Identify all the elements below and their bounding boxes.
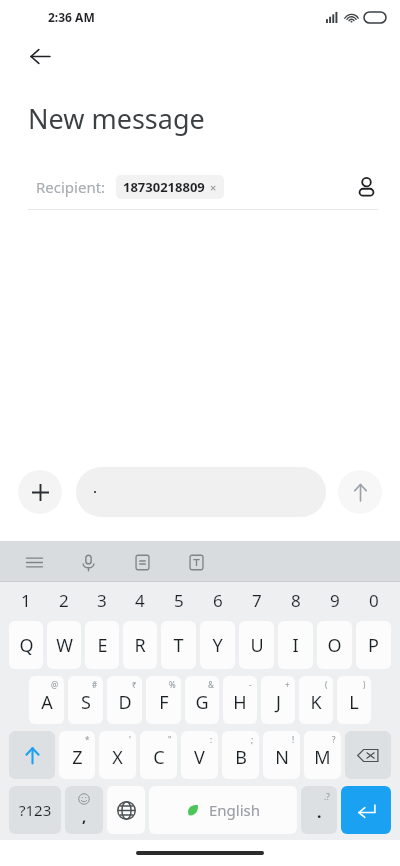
staticText: G xyxy=(195,690,209,715)
button[interactable]: & xyxy=(185,676,219,724)
staticText: : xyxy=(210,734,213,745)
staticText: 3 xyxy=(97,589,107,612)
button[interactable]: P xyxy=(356,621,391,669)
button[interactable]: 3 xyxy=(83,585,121,615)
button[interactable]: 6 xyxy=(198,585,237,615)
staticText: 2:36 AM xyxy=(48,9,95,25)
button[interactable]: " xyxy=(140,731,177,779)
button[interactable]: R xyxy=(123,621,157,669)
button[interactable]: 0 xyxy=(354,585,393,615)
button[interactable]: 4 xyxy=(121,585,159,615)
button[interactable]: % xyxy=(146,676,181,724)
staticText: H xyxy=(233,690,247,715)
button[interactable]: - xyxy=(223,676,257,724)
button[interactable]: I xyxy=(278,621,313,669)
staticText: 8 xyxy=(291,589,301,612)
button[interactable]: Backspace xyxy=(345,731,391,779)
button[interactable]: * xyxy=(59,731,95,779)
button[interactable]: Clipboard xyxy=(128,548,156,576)
button[interactable]: English xyxy=(149,786,297,834)
staticText: , xyxy=(82,806,87,826)
button[interactable]: Q xyxy=(9,621,43,669)
staticText: .? xyxy=(324,791,330,802)
button[interactable]: ₹ xyxy=(107,676,142,724)
button[interactable]: ?123 xyxy=(9,786,61,834)
button[interactable]: Send xyxy=(338,470,382,514)
staticText: Z xyxy=(72,745,83,770)
staticText: 9 xyxy=(330,589,340,612)
button[interactable]: O xyxy=(317,621,352,669)
button[interactable]: E xyxy=(85,621,119,669)
staticText: % xyxy=(169,679,176,690)
staticText: X xyxy=(112,745,123,770)
button[interactable]: ) xyxy=(337,676,371,724)
button[interactable]: ; xyxy=(222,731,259,779)
button[interactable]: 2 xyxy=(45,585,83,615)
button[interactable]: Recipient: xyxy=(0,165,400,209)
button[interactable]: ? xyxy=(304,731,341,779)
button[interactable]: Shift xyxy=(9,731,55,779)
staticText: * xyxy=(85,734,90,745)
button[interactable]: ' xyxy=(99,731,136,779)
staticText: New message xyxy=(28,100,205,137)
button[interactable]: Period xyxy=(301,786,337,834)
button[interactable] xyxy=(76,467,326,517)
staticText: Y xyxy=(212,633,223,658)
staticText: 0 xyxy=(369,589,379,612)
staticText: 6 xyxy=(213,589,223,612)
button[interactable]: W xyxy=(47,621,81,669)
button[interactable]: + xyxy=(261,676,295,724)
staticText: ; xyxy=(251,734,254,745)
button[interactable]: U xyxy=(239,621,274,669)
button[interactable]: 9 xyxy=(315,585,354,615)
staticText: A xyxy=(41,690,53,715)
staticText: B xyxy=(235,745,247,770)
staticText: " xyxy=(168,734,172,745)
staticText: C xyxy=(153,745,165,770)
button[interactable]: Choose contact xyxy=(346,167,386,207)
button[interactable]: Y xyxy=(200,621,235,669)
button[interactable]: @ xyxy=(29,676,64,724)
button[interactable]: 5 xyxy=(159,585,198,615)
button[interactable]: : xyxy=(181,731,218,779)
button[interactable]: ( xyxy=(299,676,333,724)
button[interactable]: T xyxy=(161,621,196,669)
staticText: & xyxy=(208,679,214,690)
staticText: + xyxy=(285,679,290,690)
staticText: 18730218809 xyxy=(123,178,205,196)
button[interactable]: Add attachment xyxy=(18,470,62,514)
staticText: J xyxy=(276,690,281,715)
staticText: ?123 xyxy=(19,800,52,820)
button[interactable]: 7 xyxy=(237,585,276,615)
staticText: ! xyxy=(292,734,295,745)
staticText: ( xyxy=(325,679,328,690)
staticText: V xyxy=(194,745,205,770)
staticText: ₹ xyxy=(132,679,137,690)
button[interactable]: Emoji and comma xyxy=(65,786,103,834)
button[interactable]: 1 xyxy=(7,585,45,615)
staticText: ) xyxy=(363,679,366,690)
staticText: F xyxy=(159,690,169,715)
button[interactable]: # xyxy=(68,676,103,724)
staticText: I xyxy=(292,633,299,658)
button[interactable]: 8 xyxy=(276,585,315,615)
button[interactable]: Text editing xyxy=(182,548,210,576)
staticText: × xyxy=(210,180,217,195)
staticText: T xyxy=(173,633,184,658)
button[interactable]: Enter xyxy=(341,786,391,834)
staticText: U xyxy=(250,633,264,658)
staticText: # xyxy=(92,679,98,690)
staticText: K xyxy=(310,690,322,715)
staticText: 1 xyxy=(21,589,31,612)
button[interactable]: ! xyxy=(263,731,300,779)
staticText: 7 xyxy=(252,589,262,612)
staticText: Q xyxy=(19,633,34,658)
staticText: D xyxy=(118,690,132,715)
button[interactable]: Voice input xyxy=(74,548,102,576)
button[interactable]: Menu xyxy=(20,548,48,576)
staticText: W xyxy=(56,633,73,658)
staticText: ? xyxy=(332,734,336,745)
button[interactable]: Back xyxy=(20,36,60,76)
button[interactable]: 18730218809 xyxy=(123,178,217,196)
button[interactable]: Change language xyxy=(107,786,145,834)
